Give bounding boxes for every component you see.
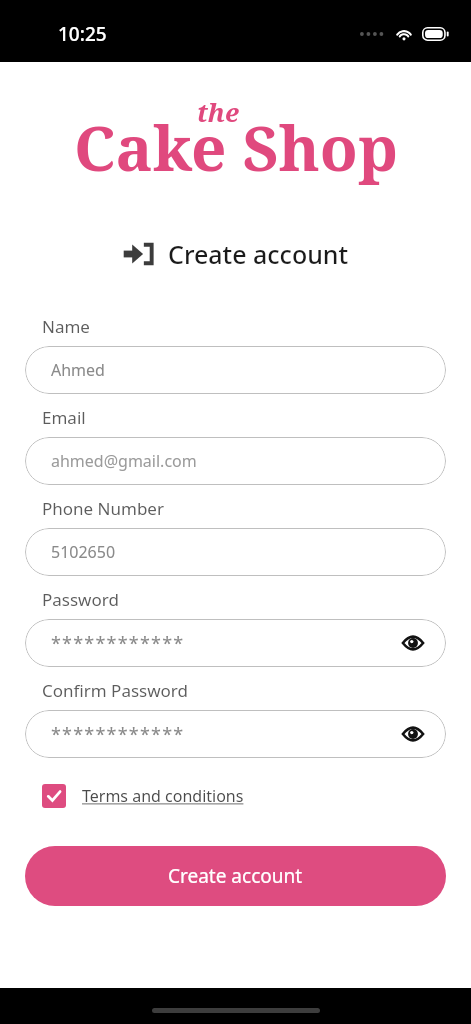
button[interactable]: 5102650 [25, 528, 446, 576]
staticText: Create account [168, 237, 349, 271]
staticText: 10:25 [58, 21, 107, 47]
button[interactable]: ahmed@gmail.com [25, 437, 446, 485]
button[interactable]: Terms and conditions [42, 784, 244, 808]
staticText: Confirm Password [42, 679, 188, 702]
button[interactable]: ************ [25, 619, 446, 667]
button[interactable]: Ahmed [25, 346, 446, 394]
staticText: ************ [51, 631, 398, 656]
staticText: Create account [168, 863, 303, 889]
staticText: Email [42, 406, 86, 429]
button[interactable]: Show password [398, 719, 428, 749]
staticText: Name [42, 315, 90, 338]
staticText: the [197, 94, 239, 129]
button[interactable]: Create account [25, 846, 446, 906]
button[interactable]: ************ [25, 710, 446, 758]
staticText: Password [42, 588, 119, 611]
staticText: Cake Shop [74, 105, 398, 187]
staticText: Terms and conditions [82, 785, 244, 807]
staticText: ************ [51, 722, 398, 747]
staticText: 5102650 [51, 541, 428, 563]
staticText: Phone Number [42, 497, 164, 520]
other: Create account [122, 237, 156, 271]
staticText: Ahmed [51, 359, 428, 381]
staticText: ahmed@gmail.com [51, 450, 428, 472]
button[interactable]: Show password [398, 628, 428, 658]
